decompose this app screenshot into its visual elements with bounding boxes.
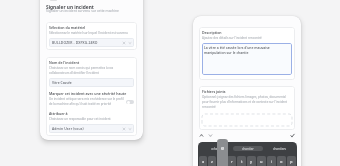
staticText: Description bbox=[202, 30, 222, 35]
staticText: BULLDOZER - DXPXG-24RO bbox=[52, 40, 122, 45]
button[interactable]: Done bbox=[290, 133, 295, 138]
button[interactable]: Clear selection bbox=[122, 41, 126, 45]
staticText: Marquer cet incident avec une sévérité h… bbox=[49, 91, 127, 96]
button[interactable]: Admin User (vous) bbox=[49, 124, 134, 133]
button[interactable]: «chan bbox=[200, 146, 231, 151]
button[interactable]: Vitre Cassée bbox=[49, 78, 134, 87]
staticText: z bbox=[211, 159, 213, 164]
button[interactable]: o bbox=[277, 156, 286, 166]
staticText: Optionnel: joignez des fichiers (images,… bbox=[202, 95, 292, 109]
staticText: chantier bbox=[242, 147, 254, 151]
button[interactable]: p bbox=[287, 156, 296, 166]
button[interactable]: r bbox=[227, 156, 236, 166]
staticText: Nom de l'incident bbox=[49, 60, 80, 65]
button[interactable]: Next field bbox=[208, 133, 213, 138]
button[interactable]: i bbox=[267, 156, 276, 166]
staticText: Signaler un incident bbox=[46, 4, 94, 11]
staticText: r bbox=[231, 159, 233, 164]
button[interactable]: y bbox=[247, 156, 256, 166]
button[interactable]: chantiers bbox=[265, 146, 295, 151]
button[interactable]: Previous field bbox=[199, 133, 204, 138]
button[interactable]: Open dropdown bbox=[128, 127, 132, 131]
staticText: «chan bbox=[211, 147, 220, 151]
staticText: a bbox=[202, 159, 205, 164]
button[interactable]: a bbox=[199, 156, 207, 166]
staticText: Sélectionnez le matériel sur lequel l'in… bbox=[49, 31, 128, 35]
staticText: Attribuer à bbox=[49, 111, 68, 116]
button[interactable]: z bbox=[208, 156, 216, 166]
button[interactable]: Upload files bbox=[202, 114, 292, 126]
button[interactable]: chantier bbox=[233, 146, 263, 151]
button[interactable]: u bbox=[257, 156, 266, 166]
staticText: e bbox=[221, 144, 225, 152]
button[interactable]: t bbox=[237, 156, 246, 166]
button[interactable]: Open dropdown bbox=[128, 41, 132, 45]
staticText: Vitre Cassée bbox=[52, 80, 72, 85]
staticText: Signaler un incident survenu sur cette m… bbox=[46, 8, 119, 12]
staticText: o bbox=[280, 159, 283, 164]
staticText: Admin User (vous) bbox=[52, 126, 122, 131]
staticText: Choisissez un nom concis qui permettra à… bbox=[49, 66, 134, 75]
staticText: chantiers bbox=[273, 147, 287, 151]
staticText: Sélection du matériel bbox=[49, 25, 86, 30]
staticText: y bbox=[250, 159, 253, 164]
button[interactable]: BULLDOZER - DXPXG-24RO bbox=[49, 38, 134, 47]
button[interactable]: Clear selection bbox=[122, 127, 126, 131]
button[interactable]: La vitre a été cassée lors d'une mauvais… bbox=[202, 43, 292, 75]
staticText: Ajoutez des détails sur l'incident renco… bbox=[202, 36, 262, 40]
staticText: Fichiers joints bbox=[202, 89, 226, 94]
staticText: i bbox=[271, 159, 273, 164]
staticText: p bbox=[290, 159, 293, 164]
staticText: La vitre a été cassée lors d'une mauvais… bbox=[204, 45, 290, 55]
staticText: Un incident critique sera mis en évidenc… bbox=[49, 97, 124, 106]
staticText: t bbox=[241, 159, 243, 164]
staticText: u bbox=[260, 159, 263, 164]
staticText: Choisissez un responsable pour cet incid… bbox=[49, 117, 111, 121]
button[interactable]: Toggle high severity bbox=[126, 100, 134, 104]
